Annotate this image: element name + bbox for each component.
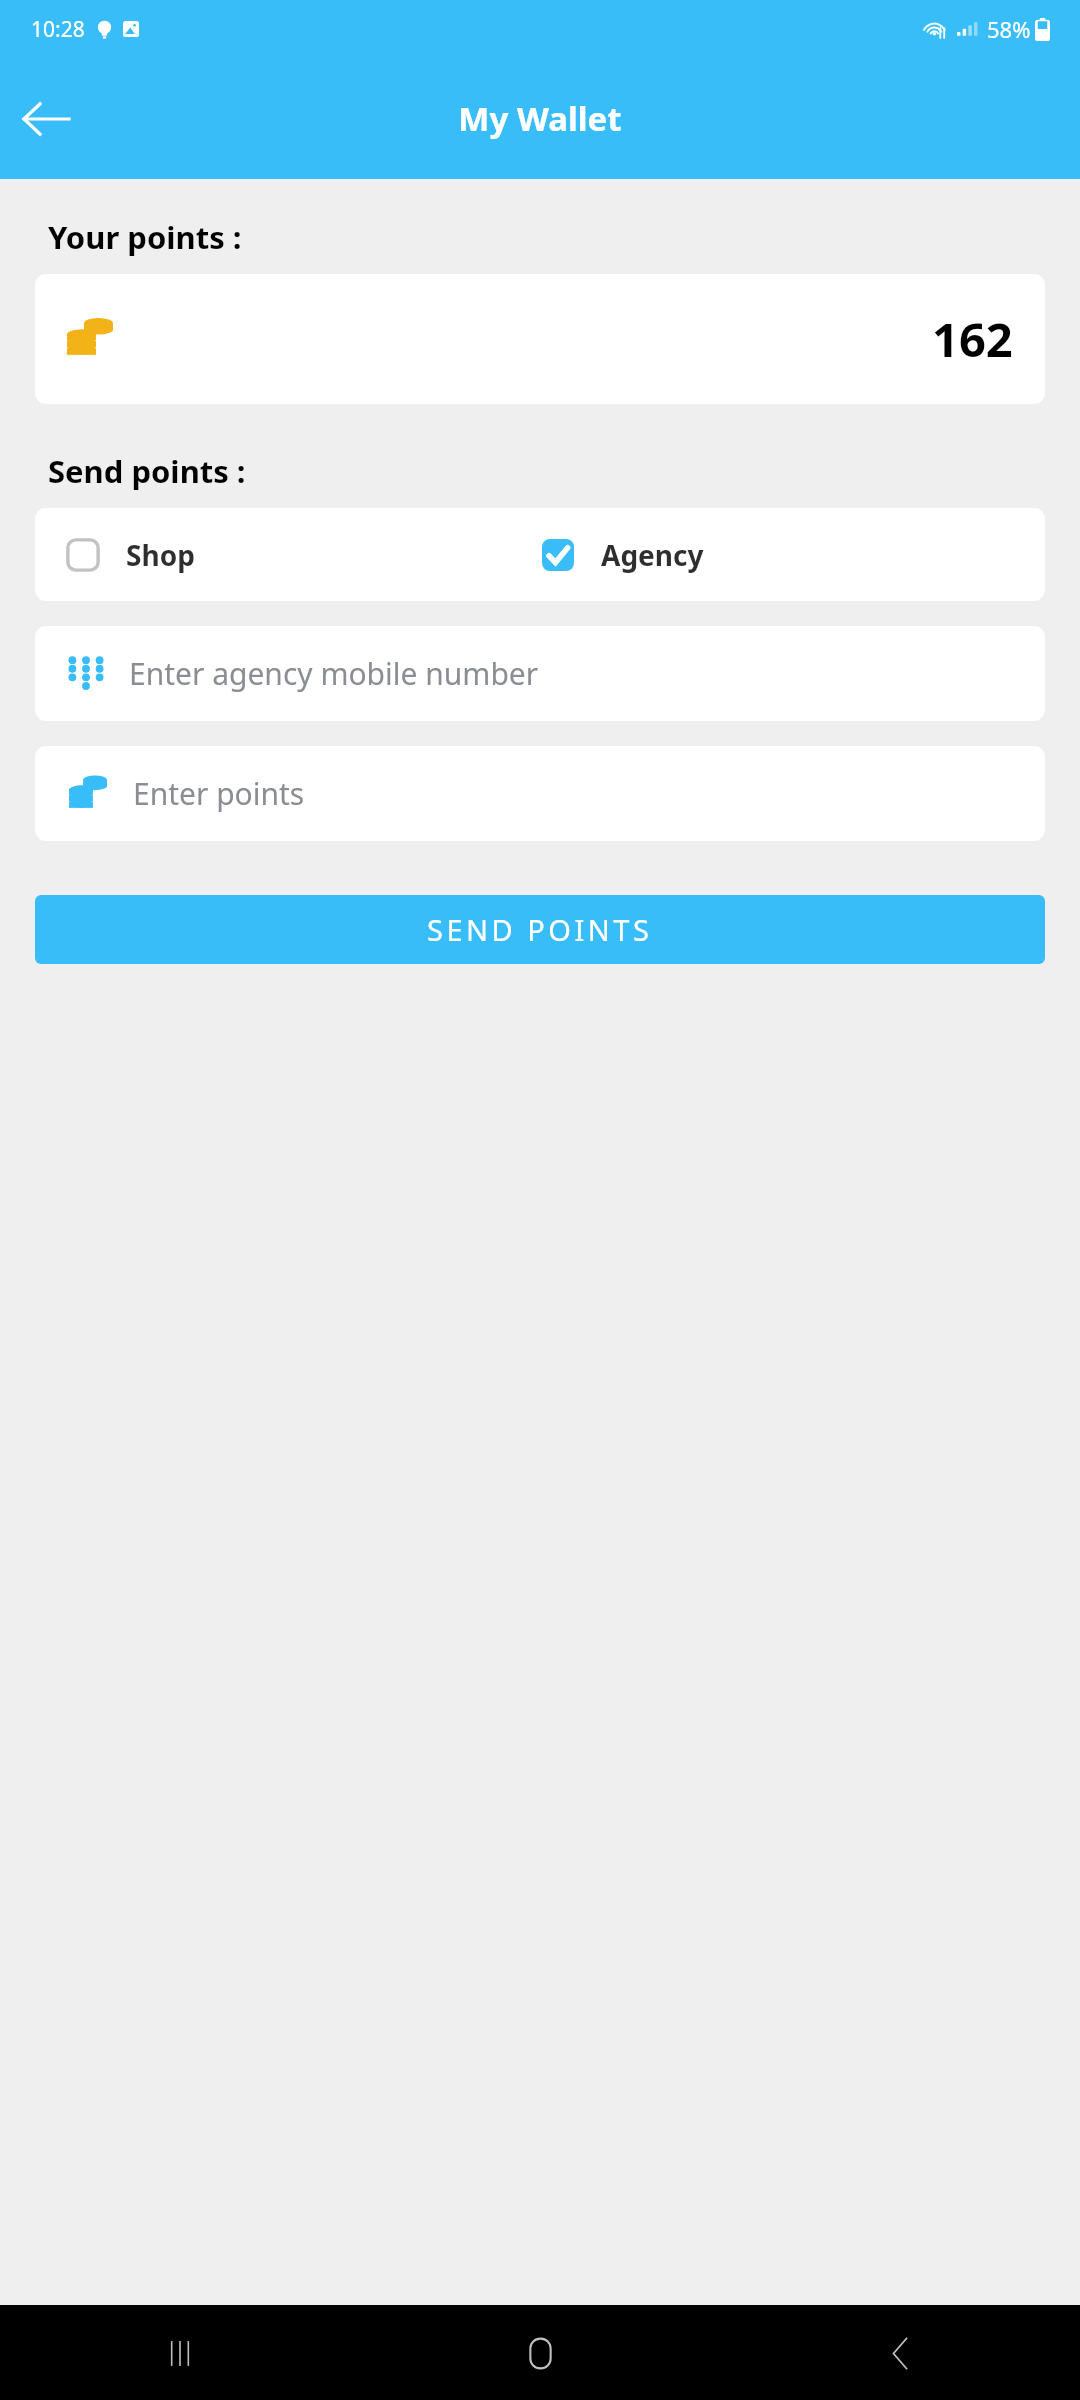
button[interactable]: SEND POINTS <box>35 895 1045 964</box>
button[interactable]: Recent apps <box>143 2316 217 2390</box>
button[interactable]: Enter agency mobile number <box>35 626 1045 721</box>
staticText: 10:28 <box>31 15 85 44</box>
staticText: Shop <box>126 536 195 574</box>
button[interactable]: Back <box>863 2316 937 2390</box>
staticText: 58% <box>987 14 1031 44</box>
button[interactable]: Back <box>18 90 76 148</box>
button[interactable]: Agency <box>540 508 1045 601</box>
staticText: Your points : <box>48 216 242 258</box>
button[interactable]: Enter points <box>35 746 1045 841</box>
staticText: Agency <box>601 536 704 574</box>
staticText: My Wallet <box>458 96 622 141</box>
button[interactable]: Home <box>503 2316 577 2390</box>
staticText: SEND POINTS <box>427 910 653 949</box>
button[interactable]: Shop <box>35 508 540 601</box>
staticText: Send points : <box>48 450 246 492</box>
staticText: Enter points <box>133 773 305 814</box>
staticText: 162 <box>932 307 1013 371</box>
staticText: Enter agency mobile number <box>129 653 539 694</box>
